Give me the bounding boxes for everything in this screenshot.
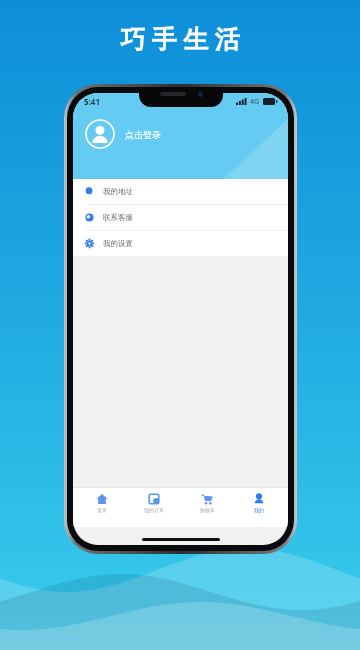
button[interactable]: 我的地址: [73, 179, 288, 204]
staticText: 首页: [97, 507, 107, 513]
button[interactable]: 购物车: [183, 491, 231, 515]
button[interactable]: 点击登录: [85, 119, 161, 149]
staticText: 我的: [254, 507, 264, 513]
button[interactable]: 我的: [235, 491, 283, 515]
staticText: 5:41: [84, 96, 100, 107]
staticText: 点击登录: [125, 129, 161, 140]
button[interactable]: 我的设置: [73, 231, 288, 256]
staticText: 我的地址: [103, 187, 133, 196]
staticText: 联系客服: [103, 213, 133, 222]
staticText: 4G: [250, 97, 260, 107]
button[interactable]: 我的订单: [130, 491, 178, 515]
button[interactable]: 联系客服: [73, 205, 288, 230]
staticText: 我的设置: [103, 239, 133, 248]
staticText: 巧 手 生 活: [120, 21, 240, 55]
button[interactable]: 首页: [78, 491, 126, 515]
staticText: 购物车: [200, 507, 215, 513]
staticText: 我的订单: [144, 507, 164, 513]
